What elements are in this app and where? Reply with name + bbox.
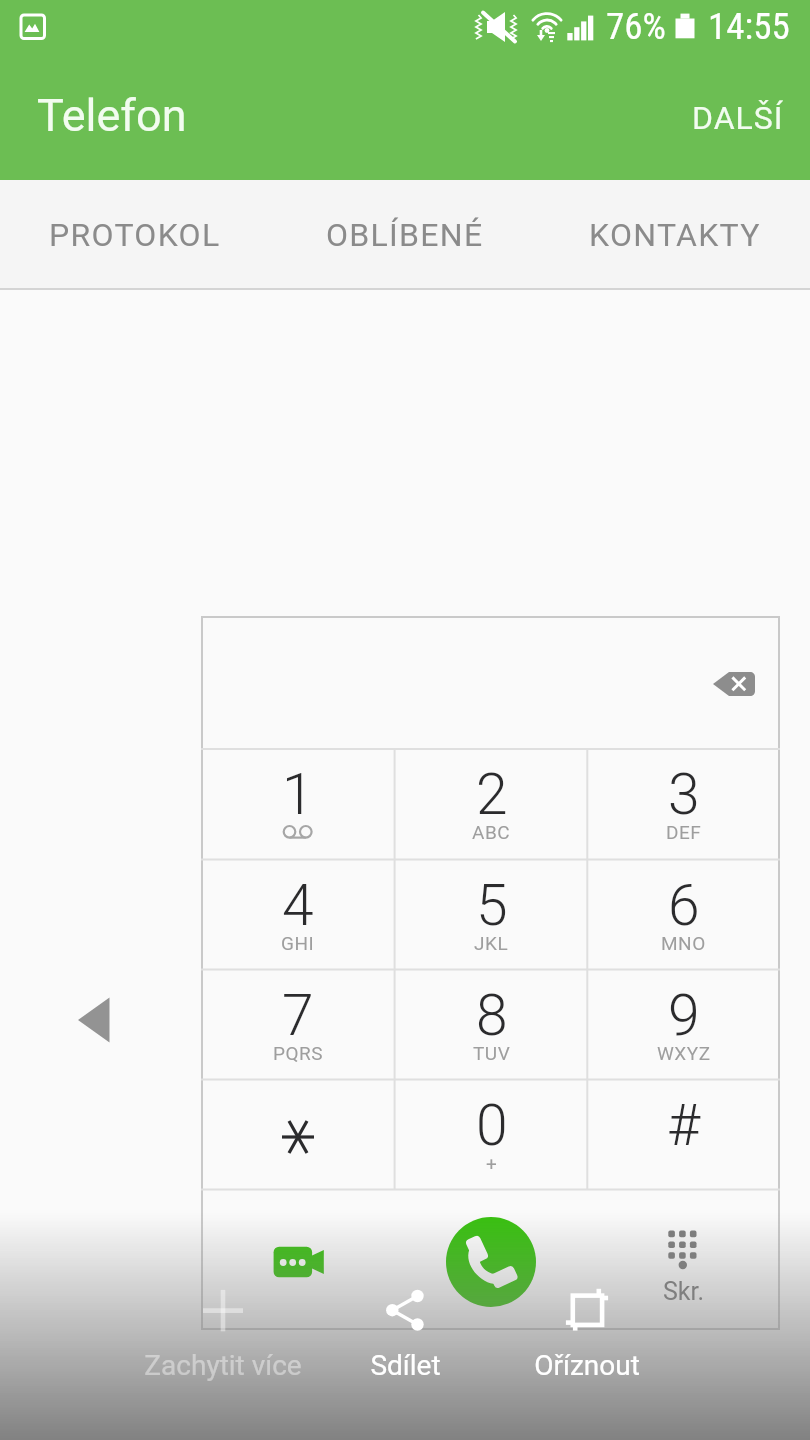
staticText: OBLÍBENÉ — [326, 216, 484, 254]
staticText: # — [667, 1092, 701, 1159]
button[interactable]: PROTOKOL — [0, 180, 270, 290]
button[interactable]: 4 — [201, 860, 395, 970]
staticText: 2 — [476, 761, 508, 828]
staticText: 4 — [282, 872, 314, 939]
staticText: 9 — [668, 982, 700, 1049]
staticText: 76% — [606, 5, 666, 48]
button[interactable]: 2 — [395, 749, 588, 860]
staticText: KONTAKTY — [589, 216, 761, 254]
staticText: + — [486, 1152, 498, 1174]
button[interactable]: 9 — [587, 970, 780, 1080]
staticText: PROTOKOL — [49, 216, 221, 254]
staticText: PQRS — [273, 1042, 324, 1064]
button[interactable]: 0 — [395, 1080, 588, 1190]
button[interactable]: Sdílet — [285, 1280, 525, 1430]
staticText: MNO — [661, 932, 706, 954]
staticText: 3 — [668, 761, 700, 828]
button[interactable]: KONTAKTY — [540, 180, 810, 290]
button[interactable]: Zachytit více — [103, 1280, 343, 1430]
button[interactable]: Backspace — [698, 650, 778, 718]
staticText: 5 — [476, 872, 508, 939]
staticText: Sdílet — [370, 1349, 441, 1382]
button[interactable]: 3 — [587, 749, 780, 860]
button[interactable]: Hide keypad — [638, 1222, 728, 1312]
button[interactable]: Oříznout — [467, 1280, 707, 1430]
staticText: GHI — [281, 932, 315, 954]
button[interactable]: OBLÍBENÉ — [270, 180, 540, 290]
button[interactable]: 6 — [587, 860, 780, 970]
button[interactable] — [201, 1080, 395, 1190]
staticText: 7 — [282, 982, 314, 1049]
button[interactable]: Call — [446, 1217, 536, 1307]
button[interactable]: # — [587, 1080, 780, 1190]
button[interactable]: 8 — [395, 970, 588, 1080]
staticText: WXYZ — [657, 1042, 711, 1064]
staticText: Zachytit více — [144, 1349, 302, 1382]
staticText: Telefon — [37, 89, 187, 142]
staticText: DEF — [666, 821, 702, 843]
staticText: 14:55 — [708, 5, 790, 48]
button[interactable]: 1 — [201, 749, 395, 860]
staticText: 0 — [476, 1092, 508, 1159]
button[interactable]: DALŠÍ — [666, 77, 810, 159]
staticText: TUV — [473, 1042, 511, 1064]
button[interactable]: Video call — [262, 1236, 336, 1288]
staticText: JKL — [474, 932, 509, 954]
staticText: Skr. — [663, 1277, 705, 1306]
staticText: Oříznout — [534, 1349, 640, 1382]
staticText: 8 — [476, 982, 508, 1049]
button[interactable]: 5 — [395, 860, 588, 970]
staticText: ABC — [472, 821, 511, 843]
button[interactable]: 7 — [201, 970, 395, 1080]
staticText: DALŠÍ — [692, 99, 784, 137]
staticText: 6 — [668, 872, 700, 939]
staticText: 1 — [282, 761, 314, 828]
